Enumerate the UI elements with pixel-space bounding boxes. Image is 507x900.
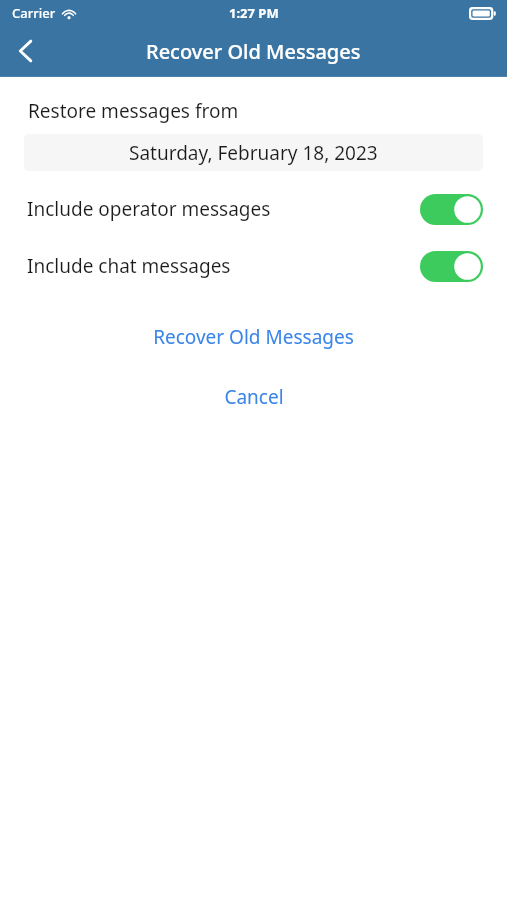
button[interactable]: Cancel: [0, 382, 507, 412]
button[interactable]: Include chat messages: [0, 250, 507, 282]
staticText: Recover Old Messages: [153, 324, 354, 350]
staticText: Carrier: [12, 4, 56, 22]
staticText: Include operator messages: [27, 196, 271, 222]
staticText: Restore messages from: [28, 98, 239, 124]
staticText: 1:27 PM: [229, 4, 279, 22]
button[interactable]: Toggle on: [420, 251, 483, 282]
staticText: Recover Old Messages: [146, 38, 361, 65]
staticText: Cancel: [224, 384, 284, 410]
button[interactable]: Saturday, February 18, 2023: [24, 134, 483, 171]
staticText: Include chat messages: [27, 253, 231, 279]
button[interactable]: Include operator messages: [0, 193, 507, 225]
button[interactable]: Recover Old Messages: [0, 322, 507, 352]
staticText: Saturday, February 18, 2023: [129, 140, 378, 166]
button[interactable]: Back: [0, 26, 52, 76]
button[interactable]: Toggle on: [420, 194, 483, 225]
